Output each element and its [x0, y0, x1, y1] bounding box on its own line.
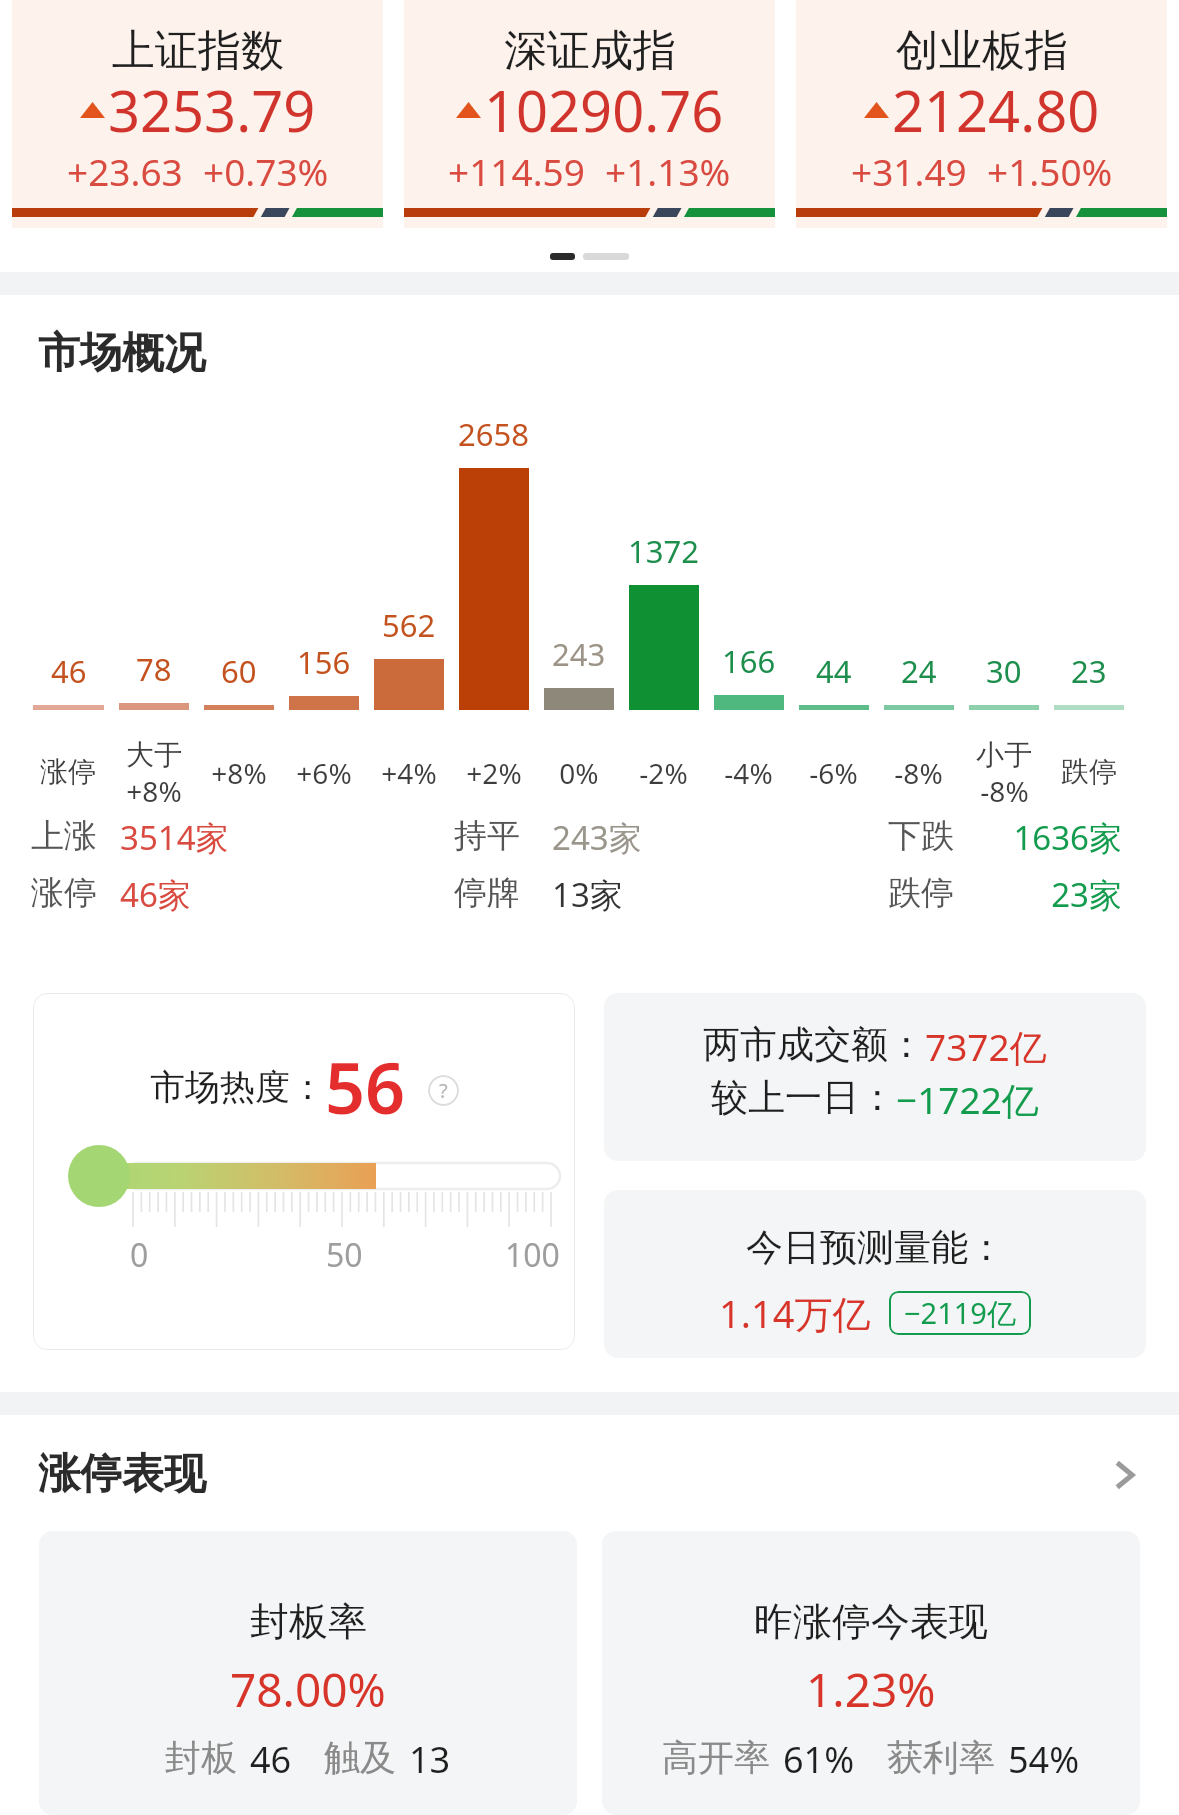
staticText: 大于 [126, 737, 182, 772]
staticText: 24 [901, 650, 937, 692]
staticText: 23家 [960, 872, 1122, 917]
staticText: 166 [722, 640, 776, 682]
button[interactable]: 上证指数 [12, 0, 383, 228]
staticText: 1372 [628, 530, 699, 572]
staticText: 46家 [120, 872, 191, 917]
staticText: 243家 [552, 815, 642, 860]
staticText: +0.73% [203, 146, 329, 196]
staticText: -8% [980, 772, 1029, 810]
staticText: 2124.80 [892, 72, 1100, 148]
staticText: 涨停表现 [38, 1448, 206, 1501]
staticText: 封板 [165, 1735, 237, 1780]
staticText: 562 [382, 604, 436, 646]
staticText: 50 [326, 1233, 363, 1277]
button[interactable]: 封板率 [39, 1531, 577, 1815]
staticText: 封板率 [250, 1597, 367, 1646]
staticText: 创业板指 [896, 24, 1068, 78]
staticText: 涨停 [40, 754, 96, 789]
staticText: +23.63 [67, 146, 183, 196]
staticText: 44 [816, 650, 852, 692]
staticText: 上涨 [31, 815, 97, 857]
staticText: 0% [559, 754, 599, 792]
staticText: -6% [809, 754, 858, 792]
staticText: 昨涨停今表现 [754, 1597, 988, 1646]
staticText: +8% [211, 754, 267, 792]
staticText: 3253.79 [108, 72, 316, 148]
staticText: 56 [325, 1039, 406, 1134]
staticText: -4% [724, 754, 773, 792]
staticText: −2119亿 [904, 1293, 1016, 1333]
staticText: +2% [466, 754, 522, 792]
staticText: +1.50% [987, 146, 1113, 196]
staticText: 1636家 [960, 815, 1122, 860]
staticText: 今日预测量能： [746, 1224, 1005, 1271]
staticText: 两市成交额： [703, 1021, 925, 1068]
staticText: 持平 [454, 815, 520, 857]
staticText: 78.00% [230, 1658, 386, 1721]
button[interactable]: 今日预测量能： [604, 1190, 1146, 1358]
staticText: 1.14万亿 [719, 1287, 871, 1339]
staticText: 0 [130, 1233, 149, 1277]
button[interactable]: 两市成交额： [604, 993, 1146, 1161]
staticText: +6% [296, 754, 352, 792]
staticText: 3514家 [120, 815, 229, 860]
staticText: 46 [51, 650, 87, 692]
staticText: 54% [1008, 1735, 1080, 1784]
staticText: 触及 [324, 1735, 396, 1780]
staticText: 23 [1071, 650, 1107, 692]
button[interactable]: 市场热度说明 [428, 1075, 459, 1106]
staticText: 7372亿 [925, 1021, 1047, 1072]
staticText: 跌停 [1061, 754, 1117, 789]
staticText: 深证成指 [504, 24, 676, 78]
staticText: 13家 [552, 872, 623, 917]
staticText: -8% [894, 754, 943, 792]
button[interactable]: 创业板指 [796, 0, 1167, 228]
staticText: ? [439, 1077, 448, 1104]
staticText: 市场概况 [38, 327, 206, 380]
staticText: 上证指数 [112, 24, 284, 78]
staticText: +1.13% [605, 146, 731, 196]
staticText: 获利率 [887, 1735, 995, 1780]
staticText: 停牌 [454, 872, 520, 914]
staticText: 涨停 [31, 872, 97, 914]
staticText: 30 [986, 650, 1022, 692]
staticText: -2% [639, 754, 688, 792]
staticText: 高开率 [662, 1735, 770, 1780]
staticText: 市场热度： [150, 1065, 325, 1109]
staticText: 100 [505, 1233, 560, 1277]
staticText: 小于 [976, 737, 1032, 772]
other: 查看涨停表现详情 [1107, 1458, 1141, 1492]
staticText: 61% [783, 1735, 855, 1784]
staticText: 13 [409, 1735, 451, 1784]
staticText: 10290.76 [484, 72, 724, 148]
staticText: 46 [250, 1735, 292, 1784]
staticText: 下跌 [888, 815, 954, 857]
staticText: 2658 [458, 413, 529, 455]
staticText: +114.59 [448, 146, 585, 196]
button[interactable]: 昨涨停今表现 [602, 1531, 1140, 1815]
button[interactable]: 市场热度： [33, 993, 575, 1350]
staticText: +31.49 [851, 146, 967, 196]
staticText: 较上一日： [711, 1074, 896, 1121]
staticText: 156 [297, 641, 351, 683]
staticText: +8% [126, 772, 182, 810]
button[interactable]: 涨停表现 [38, 1448, 1141, 1501]
staticText: 60 [221, 650, 257, 692]
staticText: −1722亿 [896, 1074, 1039, 1125]
staticText: 1.23% [806, 1658, 936, 1721]
staticText: 78 [136, 648, 172, 690]
staticText: 243 [552, 633, 606, 675]
staticText: 跌停 [888, 872, 954, 914]
button[interactable]: 深证成指 [404, 0, 775, 228]
staticText: +4% [381, 754, 437, 792]
